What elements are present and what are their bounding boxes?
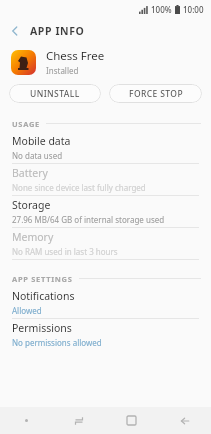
staticText: No permissions allowed [12, 337, 102, 348]
button[interactable]: Chess Free [0, 44, 211, 80]
staticText: Memory [12, 230, 54, 244]
staticText: No data used [12, 150, 63, 161]
staticText: Notifications [12, 289, 75, 303]
staticText: APP SETTINGS [12, 274, 73, 284]
button[interactable]: Memory [0, 228, 211, 259]
staticText: No RAM used in last 3 hours [12, 246, 118, 257]
button[interactable]: Mobile data [0, 132, 211, 163]
staticText: None since device last fully charged [12, 182, 146, 193]
button[interactable]: Back [158, 407, 211, 434]
staticText: Installed [46, 65, 79, 76]
staticText: Chess Free [46, 48, 105, 64]
staticText: USAGE [12, 119, 40, 129]
button[interactable]: Back [0, 18, 30, 44]
staticText: Mobile data [12, 134, 71, 148]
staticText: Battery [12, 166, 48, 180]
staticText: 100% [151, 4, 172, 15]
staticText: Permissions [12, 321, 72, 335]
button[interactable]: Home [105, 407, 158, 434]
button[interactable]: Menu indicator [0, 407, 52, 434]
staticText: 10:00 [183, 4, 204, 15]
button[interactable]: Battery [0, 164, 211, 195]
staticText: UNINSTALL [30, 88, 80, 100]
staticText: Storage [12, 198, 51, 212]
button[interactable]: FORCE STOP [109, 84, 202, 103]
staticText: 27.96 MB/64 GB of internal storage used [12, 214, 165, 225]
staticText: APP INFO [30, 24, 85, 38]
button[interactable]: Notifications [0, 287, 211, 318]
staticText: Allowed [12, 305, 42, 316]
button[interactable]: Storage [0, 196, 211, 227]
staticText: FORCE STOP [129, 88, 183, 100]
button[interactable]: UNINSTALL [9, 84, 101, 103]
button[interactable]: Permissions [0, 319, 211, 350]
button[interactable]: Recents [52, 407, 105, 434]
